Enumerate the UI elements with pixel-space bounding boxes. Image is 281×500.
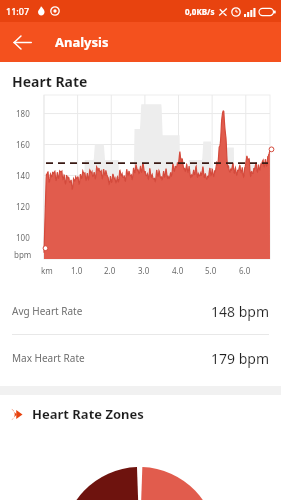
button[interactable]: Back [4,24,40,60]
staticText: 160 [16,139,30,150]
staticText: 140 [16,170,30,181]
staticText: Heart Rate [12,72,88,91]
button[interactable]: Max Heart Rate [0,335,281,381]
staticText: 0,0KB/s [185,6,215,17]
staticText: 1.0 [71,265,83,276]
staticText: 6.0 [239,265,251,276]
staticText: 3.0 [138,265,150,276]
staticText: Avg Heart Rate [12,304,83,318]
staticText: bpm [14,249,32,260]
staticText: 120 [16,201,30,212]
staticText: 179 bpm [211,349,269,368]
staticText: 180 [16,108,30,119]
staticText: 5.0 [205,265,217,276]
staticText: 148 bpm [211,302,269,321]
staticText: Max Heart Rate [12,351,85,365]
staticText: km [41,265,53,276]
button[interactable]: Heart Rate Zones [0,395,281,433]
staticText: 4.0 [172,265,184,276]
staticText: 100 [16,232,30,243]
staticText: Heart Rate Zones [32,405,144,423]
staticText: 2.0 [104,265,116,276]
staticText: 11:07 [6,5,30,17]
button[interactable]: Avg Heart Rate [0,288,281,334]
staticText: Analysis [55,33,109,51]
